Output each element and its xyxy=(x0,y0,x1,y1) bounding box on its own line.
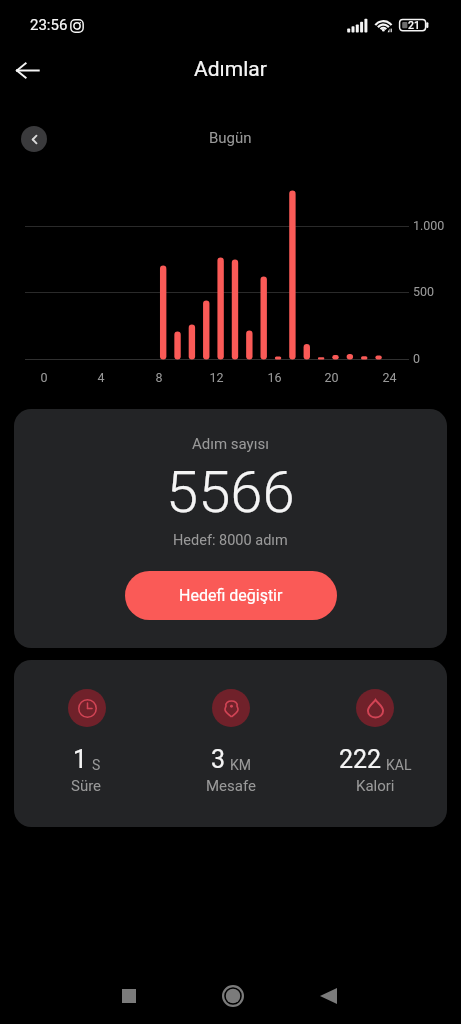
staticText: Kalori xyxy=(356,777,395,795)
staticText: 20 xyxy=(324,370,339,385)
button[interactable]: Back xyxy=(3,46,51,92)
staticText: 1 xyxy=(73,745,88,774)
staticText: 24 xyxy=(382,370,397,385)
button[interactable]: 222 xyxy=(303,689,447,795)
button[interactable]: 1 xyxy=(14,689,159,795)
staticText: 500 xyxy=(413,284,435,299)
staticText: 0 xyxy=(413,351,421,366)
staticText: 8 xyxy=(155,370,163,385)
staticText: Mesafe xyxy=(206,777,256,795)
button[interactable]: Hedefi değiştir xyxy=(125,571,337,620)
button[interactable]: Previous day xyxy=(21,126,47,152)
staticText: 0 xyxy=(40,370,48,385)
staticText: Süre xyxy=(71,777,102,795)
button[interactable]: Home xyxy=(182,971,284,1021)
staticText: Adım sayısı xyxy=(192,435,269,453)
button[interactable]: Back xyxy=(277,971,379,1021)
staticText: KAL xyxy=(386,757,412,773)
staticText: S xyxy=(92,757,101,773)
button[interactable]: 3 xyxy=(159,689,303,795)
staticText: Hedefi değiştir xyxy=(179,586,283,605)
staticText: 1.000 xyxy=(413,218,445,233)
staticText: Hedef: 8000 adım xyxy=(173,532,288,549)
staticText: Adımlar xyxy=(194,57,267,82)
staticText: 4 xyxy=(97,370,105,385)
staticText: 3 xyxy=(211,745,226,774)
staticText: 12 xyxy=(209,370,224,385)
staticText: 16 xyxy=(267,370,282,385)
staticText: 23:56 xyxy=(30,16,68,34)
button[interactable]: Recent apps xyxy=(78,971,180,1021)
staticText: 222 xyxy=(339,745,382,774)
staticText: KM xyxy=(230,757,252,773)
staticText: Bugün xyxy=(209,129,252,147)
staticText: 5566 xyxy=(166,458,295,526)
staticText: 21 xyxy=(408,19,420,31)
